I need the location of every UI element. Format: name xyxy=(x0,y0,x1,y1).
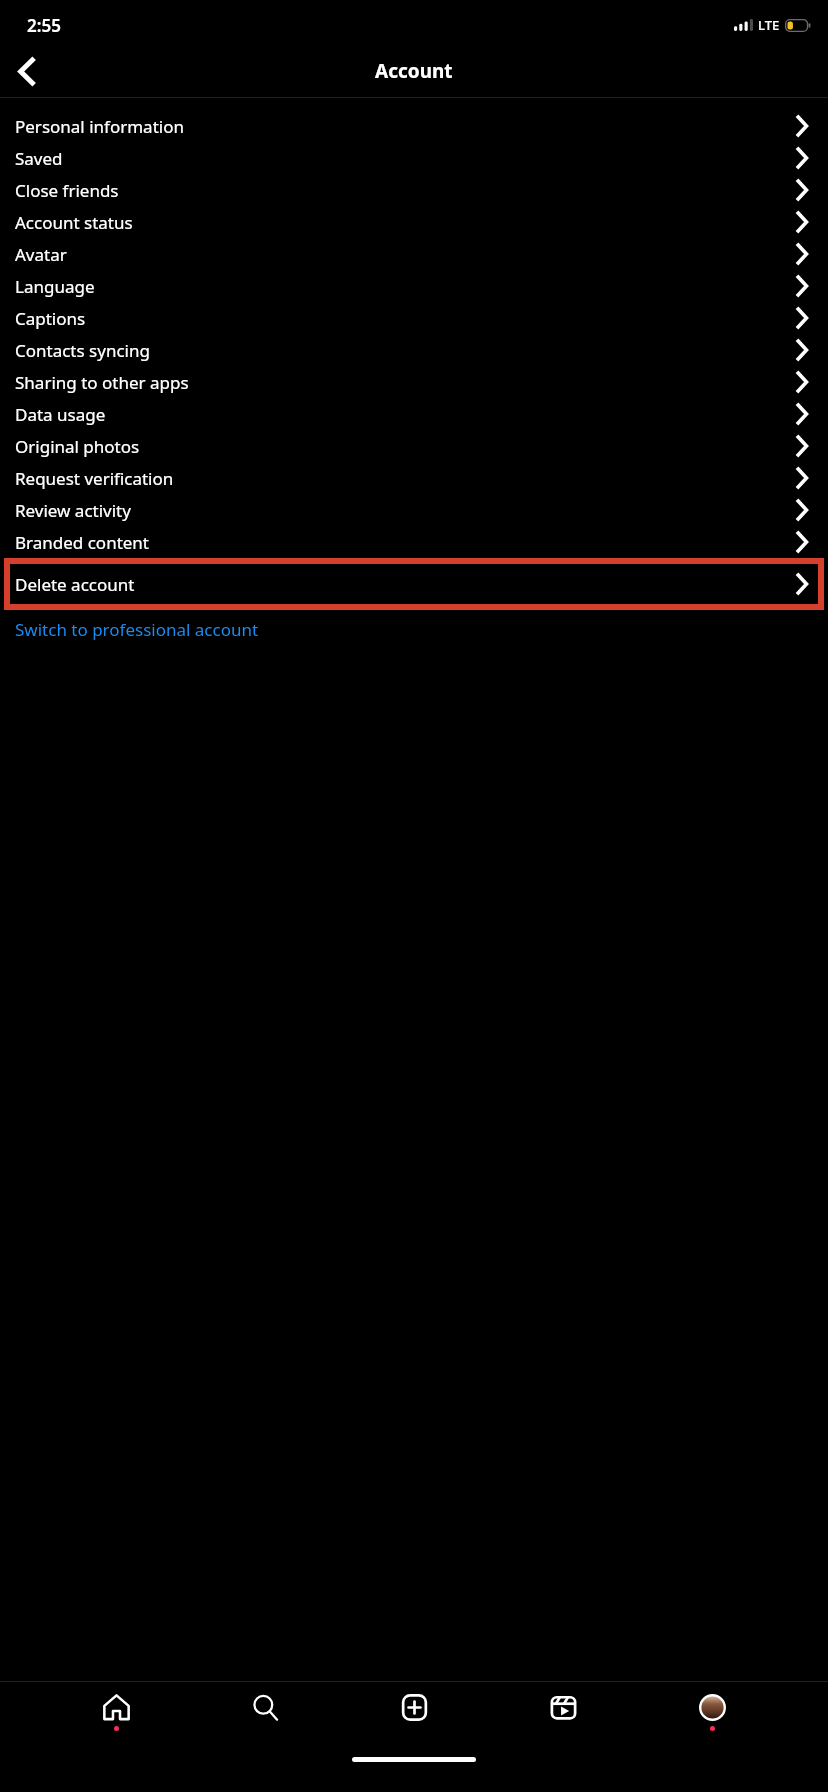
button[interactable]: Personal information xyxy=(0,110,828,142)
button[interactable]: Data usage xyxy=(0,398,828,430)
button[interactable]: Request verification xyxy=(0,462,828,494)
staticText: Account status xyxy=(15,211,133,234)
button[interactable]: Branded content xyxy=(0,526,828,558)
button[interactable]: Back xyxy=(0,45,52,97)
staticText: Sharing to other apps xyxy=(15,371,189,394)
button[interactable]: Profile xyxy=(679,1682,745,1742)
button[interactable]: Sharing to other apps xyxy=(0,366,828,398)
staticText: Language xyxy=(15,275,95,298)
staticText: 2:55 xyxy=(27,14,61,37)
button[interactable]: Switch to professional account xyxy=(0,610,828,648)
staticText: Avatar xyxy=(15,243,67,266)
staticText: Contacts syncing xyxy=(15,339,150,362)
button[interactable]: Reels xyxy=(530,1682,596,1742)
staticText: Captions xyxy=(15,307,86,330)
staticText: Request verification xyxy=(15,467,174,490)
staticText: LTE xyxy=(758,16,780,34)
button[interactable]: Captions xyxy=(0,302,828,334)
staticText: Original photos xyxy=(15,435,140,458)
button[interactable]: Review activity xyxy=(0,494,828,526)
staticText: Personal information xyxy=(15,115,184,138)
staticText: Delete account xyxy=(15,573,135,596)
staticText: Data usage xyxy=(15,403,106,426)
button[interactable]: Avatar xyxy=(0,238,828,270)
staticText: Account xyxy=(375,58,453,84)
staticText: Saved xyxy=(15,147,63,170)
staticText: Review activity xyxy=(15,499,131,522)
staticText: Switch to professional account xyxy=(15,618,259,641)
button[interactable]: Search xyxy=(232,1682,298,1742)
staticText: Branded content xyxy=(15,531,150,554)
button[interactable]: Create xyxy=(381,1682,447,1742)
button[interactable]: Language xyxy=(0,270,828,302)
staticText: Close friends xyxy=(15,179,119,202)
button[interactable]: Original photos xyxy=(0,430,828,462)
button[interactable]: Account status xyxy=(0,206,828,238)
button[interactable]: Saved xyxy=(0,142,828,174)
button[interactable]: Contacts syncing xyxy=(0,334,828,366)
button[interactable]: Home xyxy=(83,1682,149,1742)
button[interactable]: Close friends xyxy=(0,174,828,206)
button[interactable]: Delete account xyxy=(4,558,824,610)
